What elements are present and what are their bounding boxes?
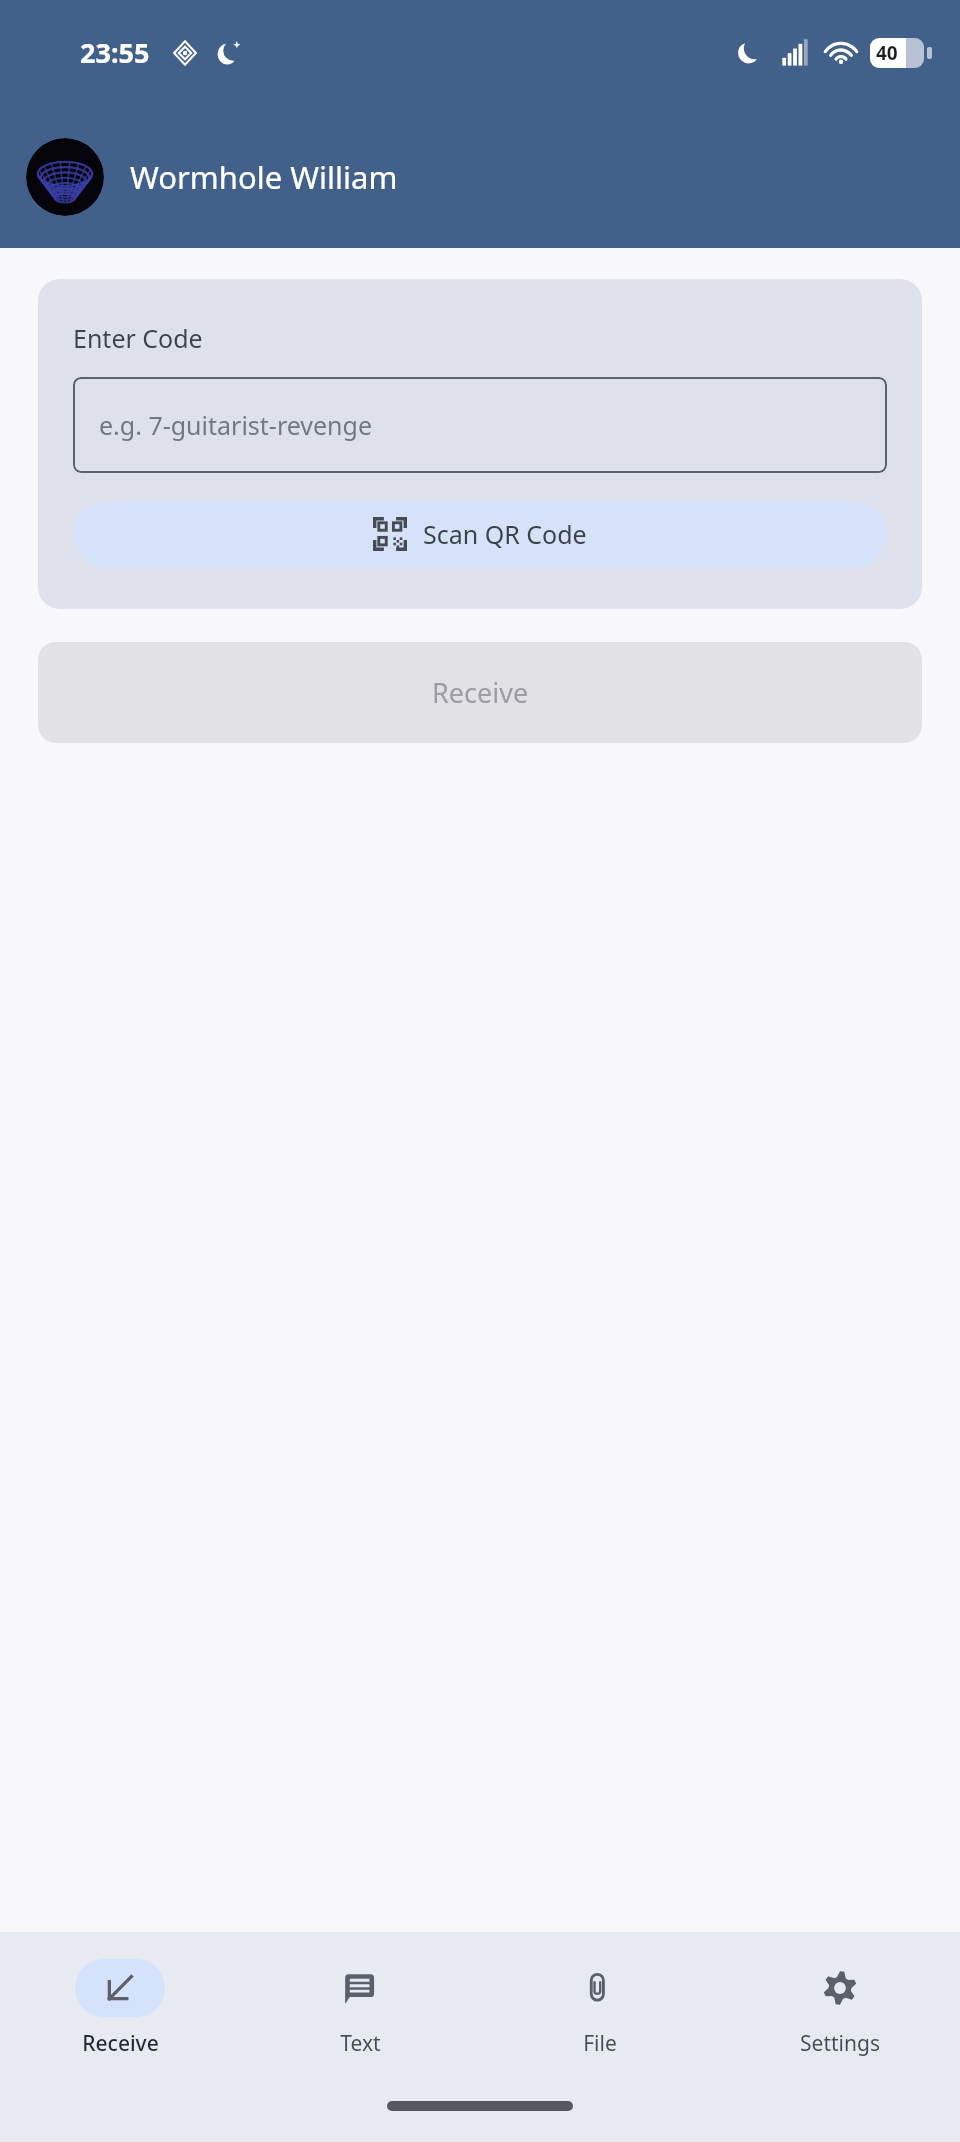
staticText: Wormhole William xyxy=(130,156,398,198)
button[interactable]: Receive xyxy=(0,1932,240,2084)
button[interactable]: Settings xyxy=(720,1932,960,2084)
staticText: File xyxy=(583,2029,617,2058)
button[interactable]: Receive xyxy=(38,642,922,743)
button[interactable]: e.g. 7-guitarist-revenge xyxy=(73,377,887,473)
staticText: Text xyxy=(340,2029,381,2058)
staticText: 40 xyxy=(876,40,898,66)
staticText: Scan QR Code xyxy=(423,517,587,551)
staticText: Enter Code xyxy=(73,321,203,355)
staticText: Receive xyxy=(82,2029,159,2058)
staticText: Settings xyxy=(800,2029,880,2058)
staticText: 23:55 xyxy=(80,34,150,71)
staticText: Receive xyxy=(432,674,529,711)
staticText: e.g. 7-guitarist-revenge xyxy=(99,408,373,442)
button[interactable]: Text xyxy=(240,1932,480,2084)
button[interactable]: Scan QR Code xyxy=(73,500,887,568)
button[interactable]: File xyxy=(480,1932,720,2084)
